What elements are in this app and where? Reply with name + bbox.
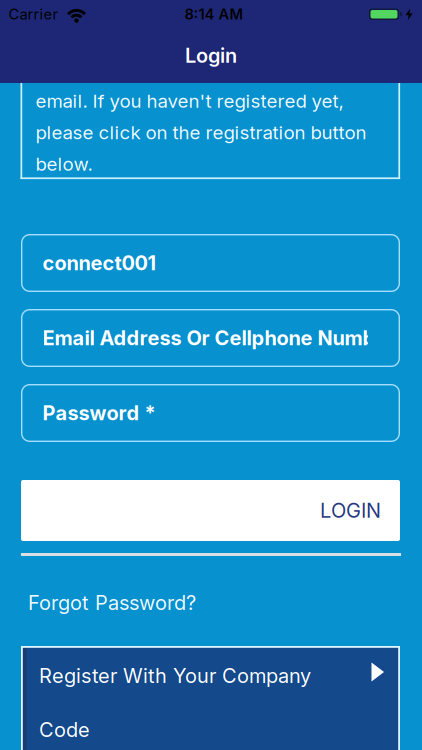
button[interactable]: Email Address Or Cellphone Number <box>21 309 400 367</box>
staticText: 8:14 AM <box>184 5 243 23</box>
staticText: Email Address Or Cellphone Number <box>42 326 395 350</box>
staticText: LOGIN <box>320 499 381 522</box>
button[interactable]: Forgot Password? <box>28 591 196 615</box>
staticText: email. If you haven't registered yet, <box>35 90 343 112</box>
button[interactable]: LOGIN <box>21 480 400 541</box>
staticText: Forgot Password? <box>28 591 196 615</box>
button[interactable]: connect001 <box>21 234 400 292</box>
staticText: please click on the registration button <box>35 121 366 143</box>
staticText: Carrier <box>8 5 58 23</box>
staticText: Login <box>185 44 237 67</box>
staticText: Password * <box>42 401 155 425</box>
staticText: Register With Your Company <box>39 664 311 688</box>
button[interactable]: Register With Your Company <box>21 646 400 750</box>
staticText: below. <box>35 153 92 175</box>
button[interactable]: Password * <box>21 384 400 442</box>
staticText: Code <box>39 718 90 742</box>
staticText: connect001 <box>42 251 156 275</box>
